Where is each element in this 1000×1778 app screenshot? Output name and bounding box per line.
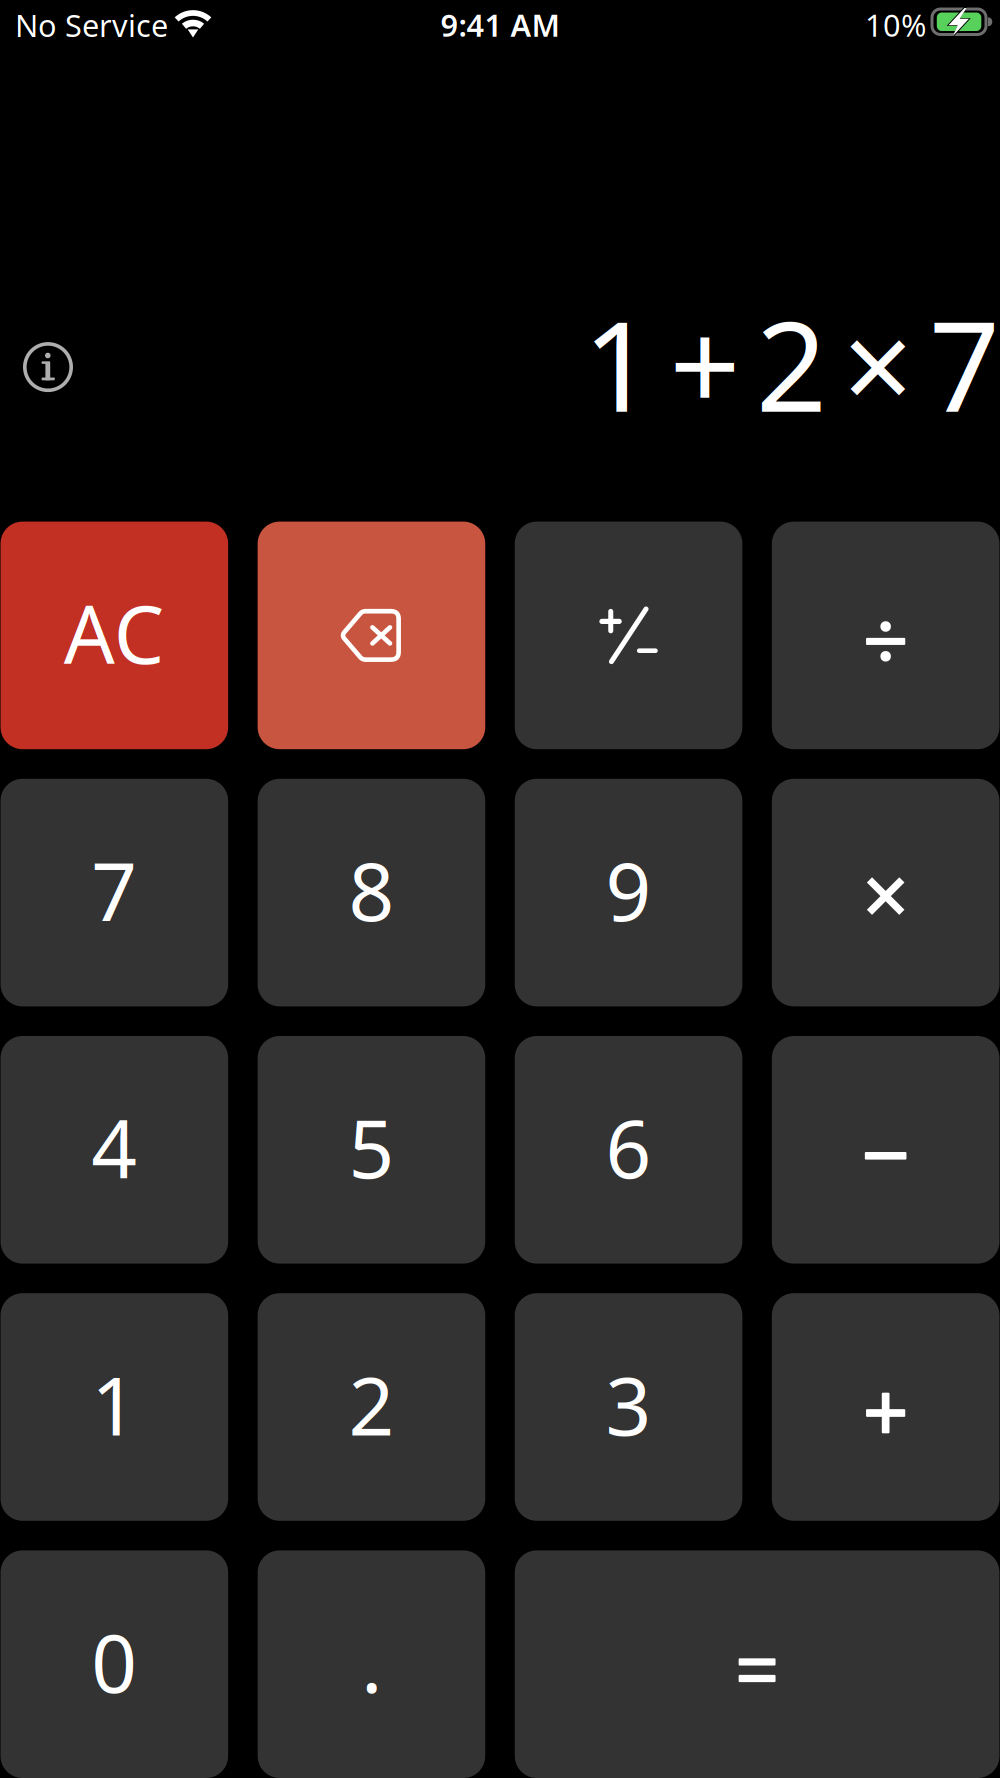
staticText: × (842, 281, 913, 446)
staticText: 1 (583, 281, 654, 446)
staticText: 0 (91, 1608, 137, 1715)
button[interactable]: 2 (258, 1293, 485, 1521)
button[interactable]: Subtract (772, 1036, 999, 1264)
staticText: 3 (605, 1351, 651, 1457)
button[interactable]: 5 (258, 1036, 485, 1264)
staticText: 6 (605, 1094, 651, 1200)
staticText: AC (64, 580, 165, 686)
button[interactable]: . (258, 1550, 485, 1778)
button[interactable]: 0 (1, 1550, 228, 1778)
staticText: 2 (348, 1351, 394, 1457)
button[interactable]: 7 (1, 779, 228, 1006)
button[interactable]: 6 (515, 1036, 742, 1264)
button[interactable]: 4 (1, 1036, 228, 1264)
staticText: 5 (348, 1094, 394, 1200)
staticText: 2 (756, 281, 827, 446)
button[interactable]: 3 (515, 1293, 742, 1521)
staticText: 4 (91, 1094, 137, 1200)
staticText: 9:41 AM (440, 5, 559, 45)
staticText: 9 (605, 837, 651, 943)
button[interactable]: Plus Minus (515, 522, 742, 749)
button[interactable]: 8 (258, 779, 485, 1006)
staticText: 10% (865, 4, 926, 45)
button[interactable]: Divide (772, 522, 999, 749)
staticText: 7 (929, 281, 1000, 446)
staticText: 8 (348, 837, 394, 943)
button[interactable]: Equals (515, 1550, 999, 1778)
staticText: No Service (15, 5, 168, 45)
staticText: . (361, 1608, 382, 1715)
button[interactable]: Add (772, 1293, 999, 1521)
button[interactable]: Multiply (772, 779, 999, 1006)
staticText: + (669, 281, 740, 446)
button[interactable]: 1 (1, 1293, 228, 1521)
button[interactable]: Delete (258, 522, 485, 749)
button[interactable]: About (22, 341, 74, 393)
button[interactable]: 9 (515, 779, 742, 1006)
staticText: 1 (91, 1351, 137, 1457)
button[interactable]: AC (1, 522, 228, 749)
staticText: 7 (91, 837, 137, 943)
